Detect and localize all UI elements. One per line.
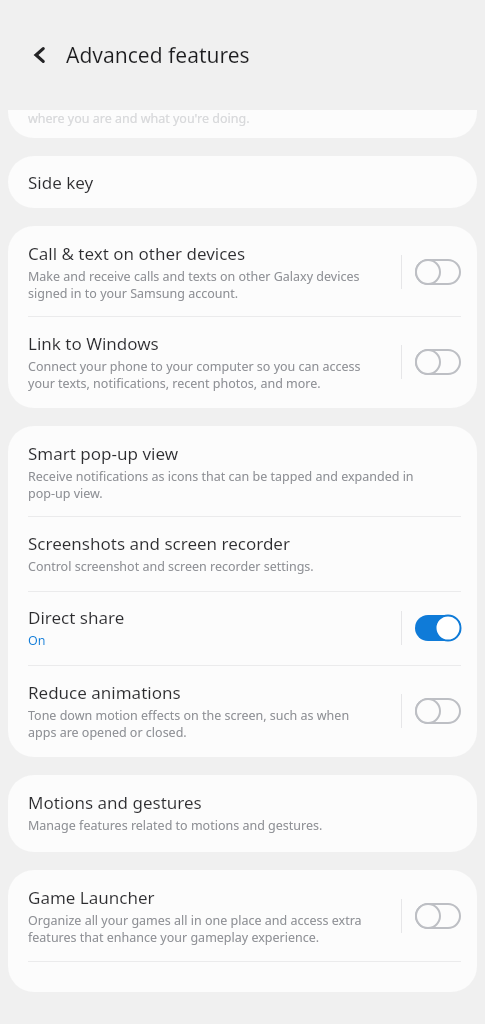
button[interactable]: Motions and gestures: [8, 775, 477, 852]
staticText: Game Launcher: [28, 886, 155, 909]
button[interactable]: Direct share: [8, 592, 477, 665]
button[interactable]: Game Launcher: [8, 870, 477, 961]
staticText: Reduce animations: [28, 681, 181, 704]
button[interactable]: Side key: [8, 156, 477, 208]
button[interactable]: Screenshots and screen recorder: [8, 517, 477, 591]
staticText: Tone down motion effects on the screen, …: [28, 707, 350, 741]
button[interactable]: Call & text on other devices: [8, 226, 477, 316]
button[interactable]: Toggle off: [415, 903, 461, 929]
staticText: Control screenshot and screen recorder s…: [28, 558, 314, 575]
staticText: Connect your phone to your computer so y…: [28, 358, 361, 392]
staticText: Motions and gestures: [28, 791, 202, 814]
staticText: Manage features related to motions and g…: [28, 817, 323, 834]
button[interactable]: Toggle off: [415, 349, 461, 375]
button[interactable]: Toggle off: [415, 259, 461, 285]
staticText: Side key: [28, 171, 94, 194]
button[interactable]: Back: [22, 37, 58, 73]
button[interactable]: where you are and what you're doing.: [8, 110, 477, 138]
button[interactable]: Link to Windows: [8, 317, 477, 408]
staticText: Receive notifications as icons that can …: [28, 468, 414, 502]
staticText: Smart pop-up view: [28, 442, 179, 465]
button[interactable]: Smart pop-up view: [8, 426, 477, 516]
staticText: Link to Windows: [28, 332, 159, 355]
staticText: Organize all your games all in one place…: [28, 912, 362, 946]
button[interactable]: Reduce animations: [8, 666, 477, 757]
staticText: Advanced features: [66, 41, 250, 70]
staticText: Screenshots and screen recorder: [28, 532, 290, 555]
staticText: Call & text on other devices: [28, 242, 246, 265]
staticText: Direct share: [28, 606, 125, 629]
staticText: On: [28, 632, 46, 649]
button[interactable]: Toggle on: [415, 615, 461, 641]
staticText: where you are and what you're doing.: [28, 110, 250, 127]
staticText: Make and receive calls and texts on othe…: [28, 268, 360, 302]
button[interactable]: Toggle off: [415, 698, 461, 724]
